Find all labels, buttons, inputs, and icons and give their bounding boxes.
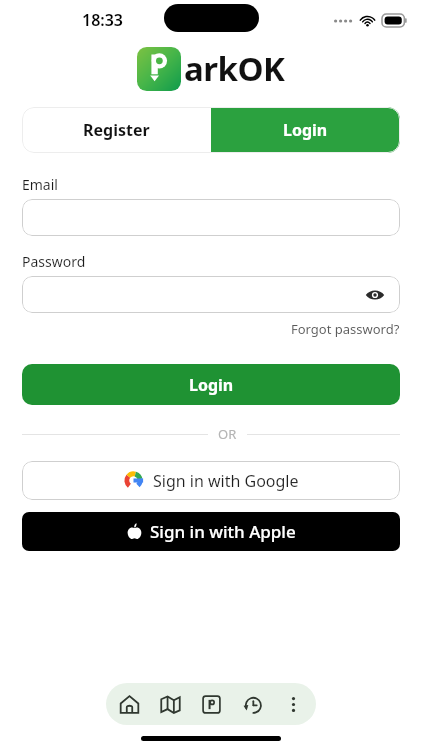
staticText: Login: [189, 374, 234, 396]
button[interactable]: Home: [111, 686, 147, 722]
button[interactable]: Show password: [22, 276, 400, 313]
button[interactable]: Register: [22, 107, 211, 153]
button[interactable]: Sign in with Apple: [22, 512, 400, 551]
button[interactable]: Login: [211, 107, 400, 153]
staticText: 18:33: [82, 9, 124, 31]
button[interactable]: Forgot password?: [291, 320, 400, 338]
staticText: Register: [83, 119, 150, 141]
staticText: Sign in with Google: [153, 470, 299, 492]
button[interactable]: Sign in with Google: [22, 461, 400, 500]
staticText: Password: [22, 252, 86, 271]
staticText: arkOK: [184, 46, 285, 91]
staticText: Login: [283, 119, 328, 141]
button[interactable]: Login: [22, 364, 400, 405]
staticText: Sign in with Apple: [150, 520, 296, 543]
staticText: Email: [22, 175, 58, 194]
button[interactable]: More options: [275, 686, 311, 722]
button[interactable]: Map: [152, 686, 188, 722]
button[interactable]: [22, 199, 400, 236]
button[interactable]: Show password: [362, 282, 388, 308]
staticText: Forgot password?: [291, 320, 400, 338]
button[interactable]: History: [234, 686, 270, 722]
button[interactable]: Parking: [193, 686, 229, 722]
staticText: OR: [218, 425, 237, 443]
